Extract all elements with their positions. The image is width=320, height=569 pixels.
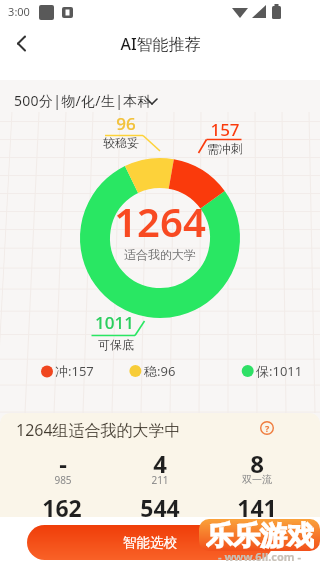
staticText: 544 (140, 492, 180, 523)
staticText: 适合我的大学 (124, 247, 196, 262)
staticText: 稳:96 (144, 362, 176, 380)
button[interactable]: 智能选校 (27, 525, 273, 560)
staticText: ? (265, 422, 270, 434)
staticText: 3:00 (8, 4, 30, 19)
staticText: 1011 (95, 311, 134, 334)
staticText: 8 (250, 447, 264, 480)
button[interactable]: ? (259, 420, 275, 436)
staticText: 智能选校 (123, 534, 177, 551)
staticText: 可保底 (98, 337, 134, 352)
staticText: 157 (210, 118, 240, 141)
staticText: 1264组适合我的大学中 (16, 419, 181, 441)
staticText: 4 (153, 447, 167, 480)
button[interactable] (6, 30, 36, 60)
button[interactable]: 500分|物/化/生|本科 (8, 88, 152, 112)
staticText: 162 (42, 492, 82, 523)
staticText: 1264 (114, 194, 206, 248)
staticText: 211 (151, 473, 169, 487)
staticText: 96 (116, 112, 136, 135)
staticText: 保:1011 (256, 362, 303, 380)
staticText: 双一流 (242, 473, 272, 486)
staticText: - www.6ll.com - (218, 549, 301, 564)
staticText: 985 (54, 473, 72, 487)
staticText: 需冲刺 (207, 141, 243, 156)
staticText: 较稳妥 (103, 135, 139, 150)
staticText: 冲:157 (55, 362, 94, 380)
staticText: 141 (237, 492, 277, 523)
staticText: AI智能推荐 (120, 33, 201, 55)
staticText: - (59, 447, 67, 480)
staticText: 乐乐游戏 (206, 519, 314, 551)
staticText: 500分|物/化/生|本科 (14, 91, 152, 110)
